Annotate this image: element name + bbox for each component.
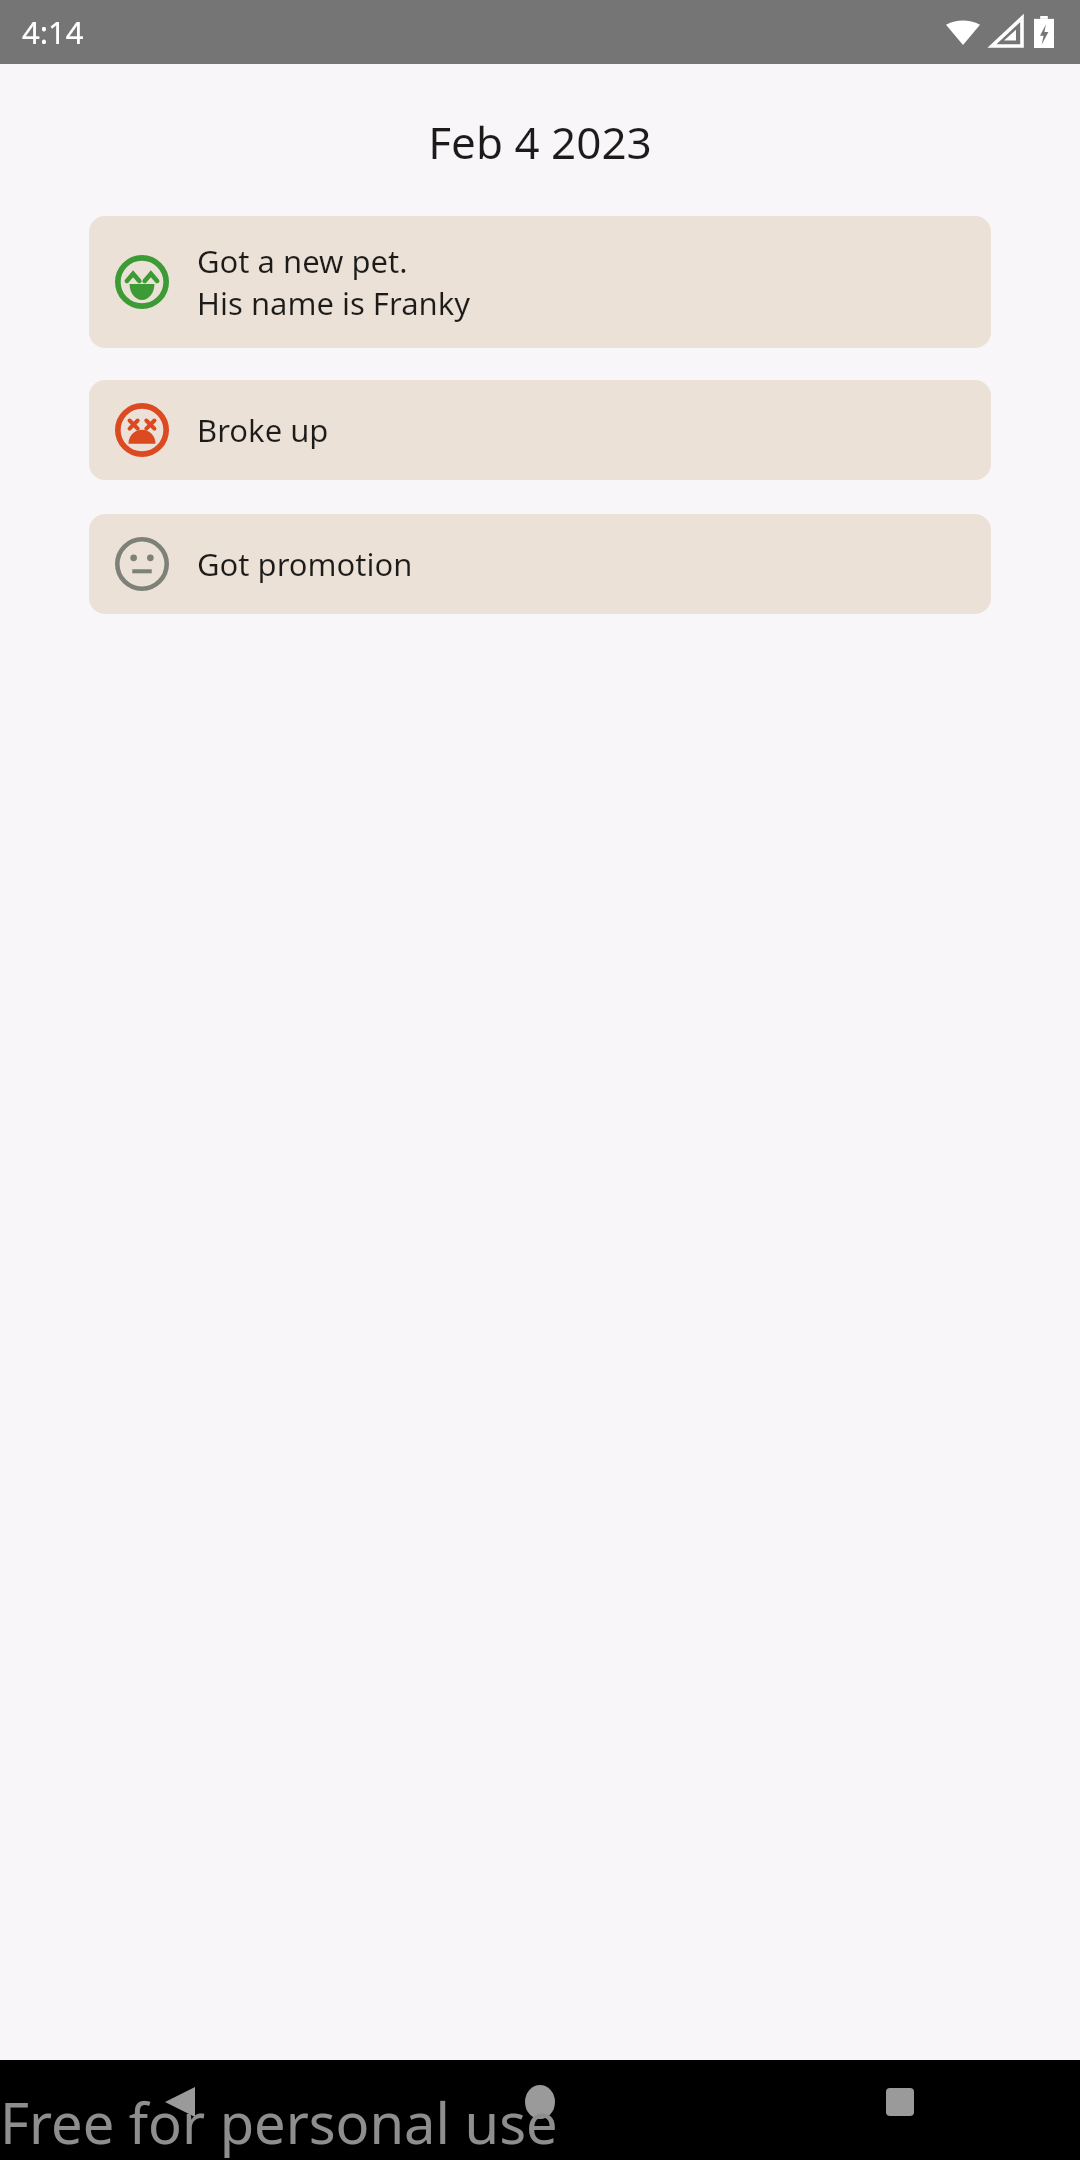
staticText: Free for personal use	[0, 2084, 558, 2160]
button[interactable]: Got a new pet.	[89, 216, 991, 348]
staticText: 4:14	[22, 11, 84, 53]
staticText: Feb 4 2023	[0, 112, 1080, 172]
staticText: His name is Franky	[197, 282, 471, 324]
staticText: Got a new pet.	[197, 240, 408, 282]
button[interactable]: Back	[0, 2060, 360, 2160]
staticText: Got promotion	[197, 543, 413, 585]
button[interactable]: Got promotion	[89, 514, 991, 614]
button[interactable]: Broke up	[89, 380, 991, 480]
button[interactable]: Home	[360, 2060, 720, 2160]
button[interactable]: Recent apps	[720, 2060, 1080, 2160]
staticText: Broke up	[197, 409, 329, 451]
